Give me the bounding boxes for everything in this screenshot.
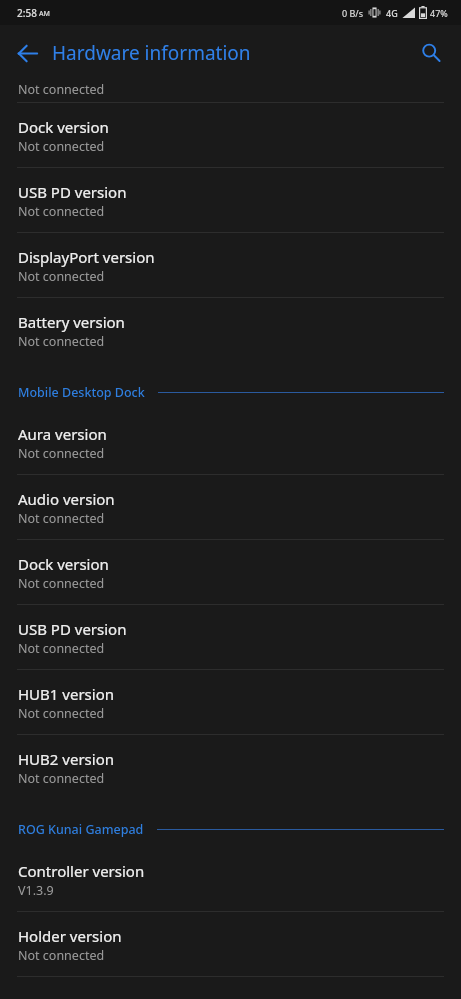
- staticText: Battery version: [18, 312, 125, 332]
- staticText: HUB1 version: [18, 684, 114, 704]
- staticText: Mobile Desktop Dock: [18, 384, 145, 401]
- staticText: USB PD version: [18, 182, 127, 202]
- button[interactable]: Back: [5, 31, 49, 75]
- button[interactable]: HUB2 version: [0, 735, 461, 799]
- staticText: Holder version: [18, 926, 122, 946]
- button[interactable]: Dock version: [0, 540, 461, 604]
- staticText: Controller version: [18, 861, 145, 881]
- staticText: Not connected: [18, 705, 105, 722]
- staticText: Dock version: [18, 554, 109, 574]
- button[interactable]: USB PD version: [0, 168, 461, 232]
- staticText: Not connected: [18, 138, 105, 155]
- staticText: AM: [39, 9, 51, 19]
- staticText: Not connected: [18, 333, 105, 350]
- staticText: Not connected: [18, 203, 105, 220]
- staticText: Hardware information: [52, 40, 251, 66]
- staticText: USB PD version: [18, 619, 127, 639]
- staticText: Not connected: [18, 770, 105, 787]
- staticText: ROG Kunai Gamepad: [18, 821, 144, 838]
- button[interactable]: HUB1 version: [0, 670, 461, 734]
- button[interactable]: Dock version: [0, 103, 461, 167]
- button[interactable]: Controller version: [0, 847, 461, 911]
- staticText: 4G: [386, 7, 398, 19]
- staticText: Not connected: [18, 81, 105, 98]
- staticText: Not connected: [18, 640, 105, 657]
- staticText: Audio version: [18, 489, 115, 509]
- button[interactable]: Battery version: [0, 298, 461, 362]
- staticText: Not connected: [18, 510, 105, 527]
- staticText: HUB2 version: [18, 749, 114, 769]
- staticText: Dock version: [18, 117, 109, 137]
- button[interactable]: Aura version: [0, 410, 461, 474]
- button[interactable]: Not connected: [0, 81, 461, 102]
- button[interactable]: USB PD version: [0, 605, 461, 669]
- staticText: 0 B/s: [342, 7, 363, 19]
- button[interactable]: DisplayPort version: [0, 233, 461, 297]
- staticText: 2:58: [17, 6, 37, 20]
- staticText: Not connected: [18, 445, 105, 462]
- staticText: 47%: [430, 7, 448, 19]
- staticText: V1.3.9: [18, 882, 54, 899]
- staticText: Not connected: [18, 575, 105, 592]
- staticText: Not connected: [18, 947, 105, 964]
- button[interactable]: Search: [409, 31, 453, 75]
- staticText: Not connected: [18, 268, 105, 285]
- button[interactable]: Audio version: [0, 475, 461, 539]
- button[interactable]: Holder version: [0, 912, 461, 976]
- staticText: Aura version: [18, 424, 107, 444]
- staticText: DisplayPort version: [18, 247, 155, 267]
